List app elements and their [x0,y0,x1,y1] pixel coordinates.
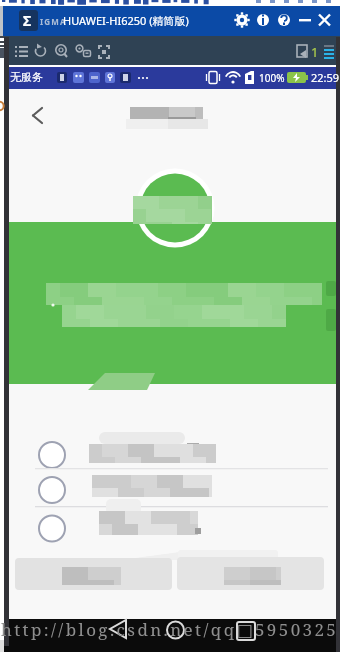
staticText: Σ [23,11,32,30]
button[interactable] [231,615,261,645]
button[interactable] [9,473,336,505]
button[interactable] [9,512,336,544]
staticText: IGMA [40,16,67,27]
staticText: 22:59 [311,70,340,85]
button[interactable] [160,615,190,645]
button[interactable] [24,100,52,130]
button[interactable] [135,168,215,248]
staticText: 无服务 [10,70,43,84]
staticText: 100% [259,71,285,85]
staticText: HUAWEI-HI6250 (精简版) [63,13,189,28]
button[interactable] [104,615,134,645]
button[interactable] [177,557,324,590]
button[interactable] [9,438,336,470]
staticText: 1 [311,43,319,61]
staticText: http://blog.csdn.net/qq□5950325 [1,618,339,641]
button[interactable] [15,558,172,590]
